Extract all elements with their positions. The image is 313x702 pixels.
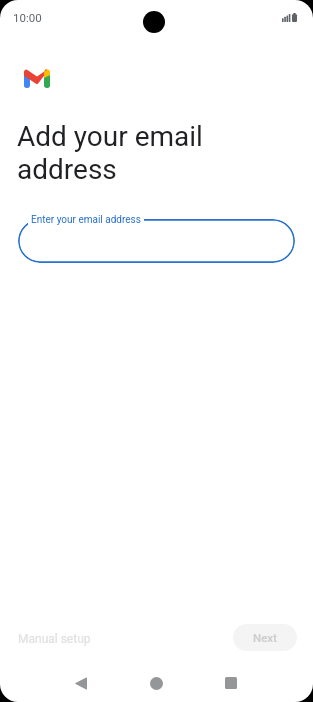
button[interactable]: Manual setup xyxy=(10,626,99,652)
staticText: Enter your email address xyxy=(31,214,141,226)
button[interactable]: Back xyxy=(61,663,101,702)
staticText: Next xyxy=(253,631,277,644)
button[interactable]: Next xyxy=(233,624,297,651)
staticText: Add your email address xyxy=(17,120,203,185)
staticText: Manual setup xyxy=(18,632,91,646)
button[interactable]: Recent apps xyxy=(211,663,251,702)
staticText: 10:00 xyxy=(13,11,42,24)
button[interactable] xyxy=(18,219,295,263)
button[interactable]: Home xyxy=(136,663,176,702)
